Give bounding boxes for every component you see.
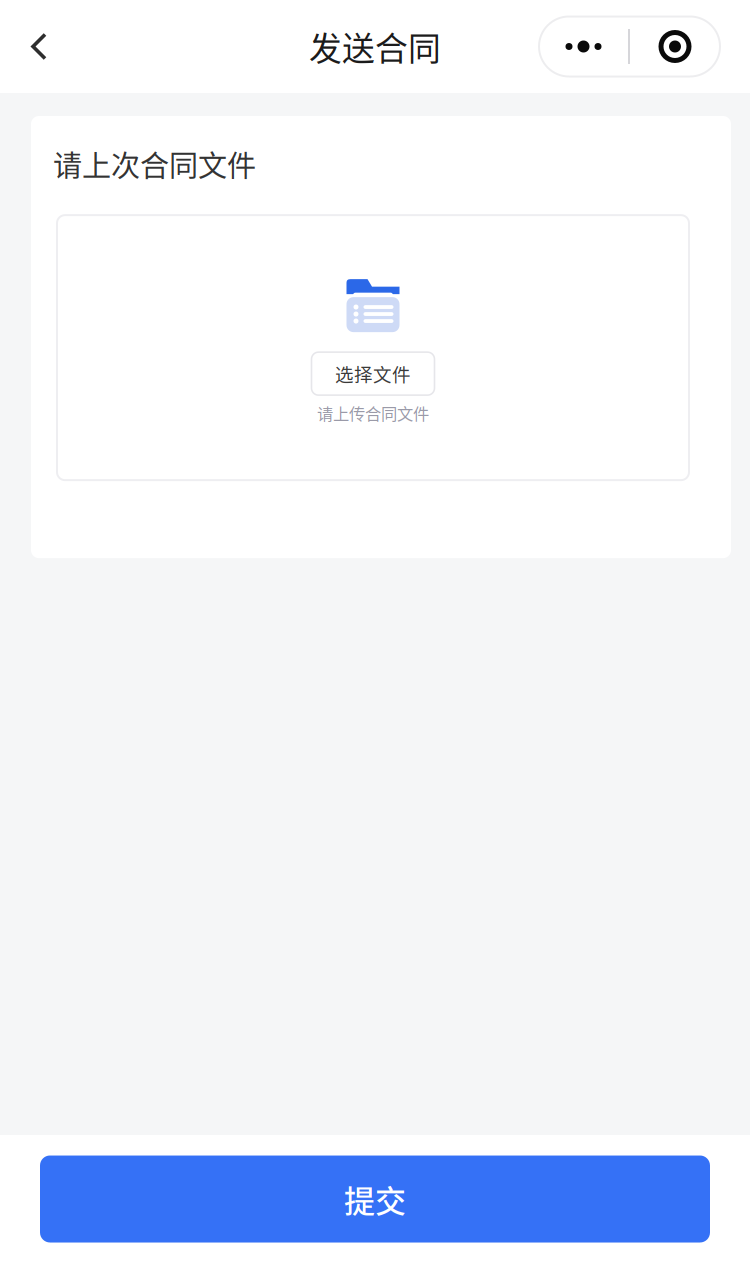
button[interactable]: 选择文件 <box>311 352 434 395</box>
staticText: 发送合同 <box>309 23 441 70</box>
button[interactable]: More options <box>539 16 720 76</box>
staticText: 提交 <box>344 1177 406 1221</box>
staticText: 请上传合同文件 <box>317 401 429 425</box>
button[interactable]: Back <box>0 10 78 82</box>
staticText: 请上次合同文件 <box>53 143 256 185</box>
staticText: 选择文件 <box>335 360 411 387</box>
button[interactable]: 提交 <box>40 1155 710 1242</box>
